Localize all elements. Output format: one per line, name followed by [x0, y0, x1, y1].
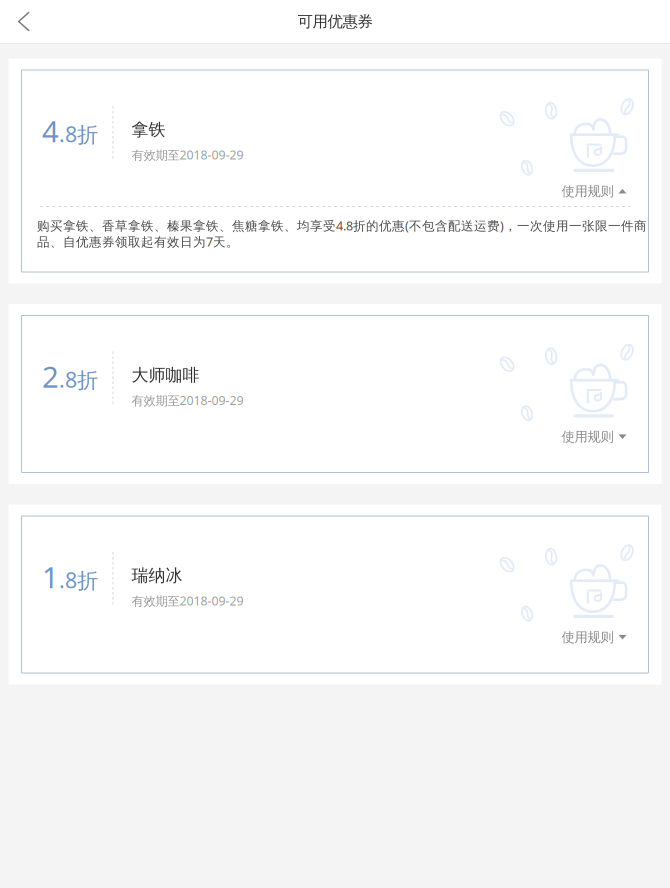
staticText: 1: [42, 557, 59, 597]
staticText: .8折: [59, 566, 98, 595]
button[interactable]: 使用规则: [555, 624, 632, 651]
staticText: 4: [42, 111, 59, 151]
staticText: 大师咖啡: [131, 364, 199, 386]
staticText: 有效期至2018-09-29: [131, 146, 243, 163]
staticText: 瑞纳冰: [131, 565, 182, 586]
staticText: 有效期至2018-09-29: [131, 392, 243, 409]
staticText: 购买拿铁、香草拿铁、榛果拿铁、焦糖拿铁、均享受4.8折的优惠(不包含配送运费)，…: [37, 217, 647, 250]
staticText: .8折: [59, 365, 98, 394]
button[interactable]: Back: [0, 0, 46, 42]
staticText: 使用规则: [561, 183, 613, 200]
staticText: .8折: [59, 120, 98, 149]
staticText: 可用优惠券: [297, 12, 372, 31]
staticText: 使用规则: [561, 428, 613, 445]
button[interactable]: 使用规则: [555, 423, 632, 450]
staticText: 有效期至2018-09-29: [131, 592, 243, 609]
staticText: 使用规则: [561, 629, 613, 646]
staticText: 拿铁: [131, 119, 165, 140]
staticText: 2: [42, 356, 59, 396]
button[interactable]: 使用规则: [555, 178, 632, 205]
